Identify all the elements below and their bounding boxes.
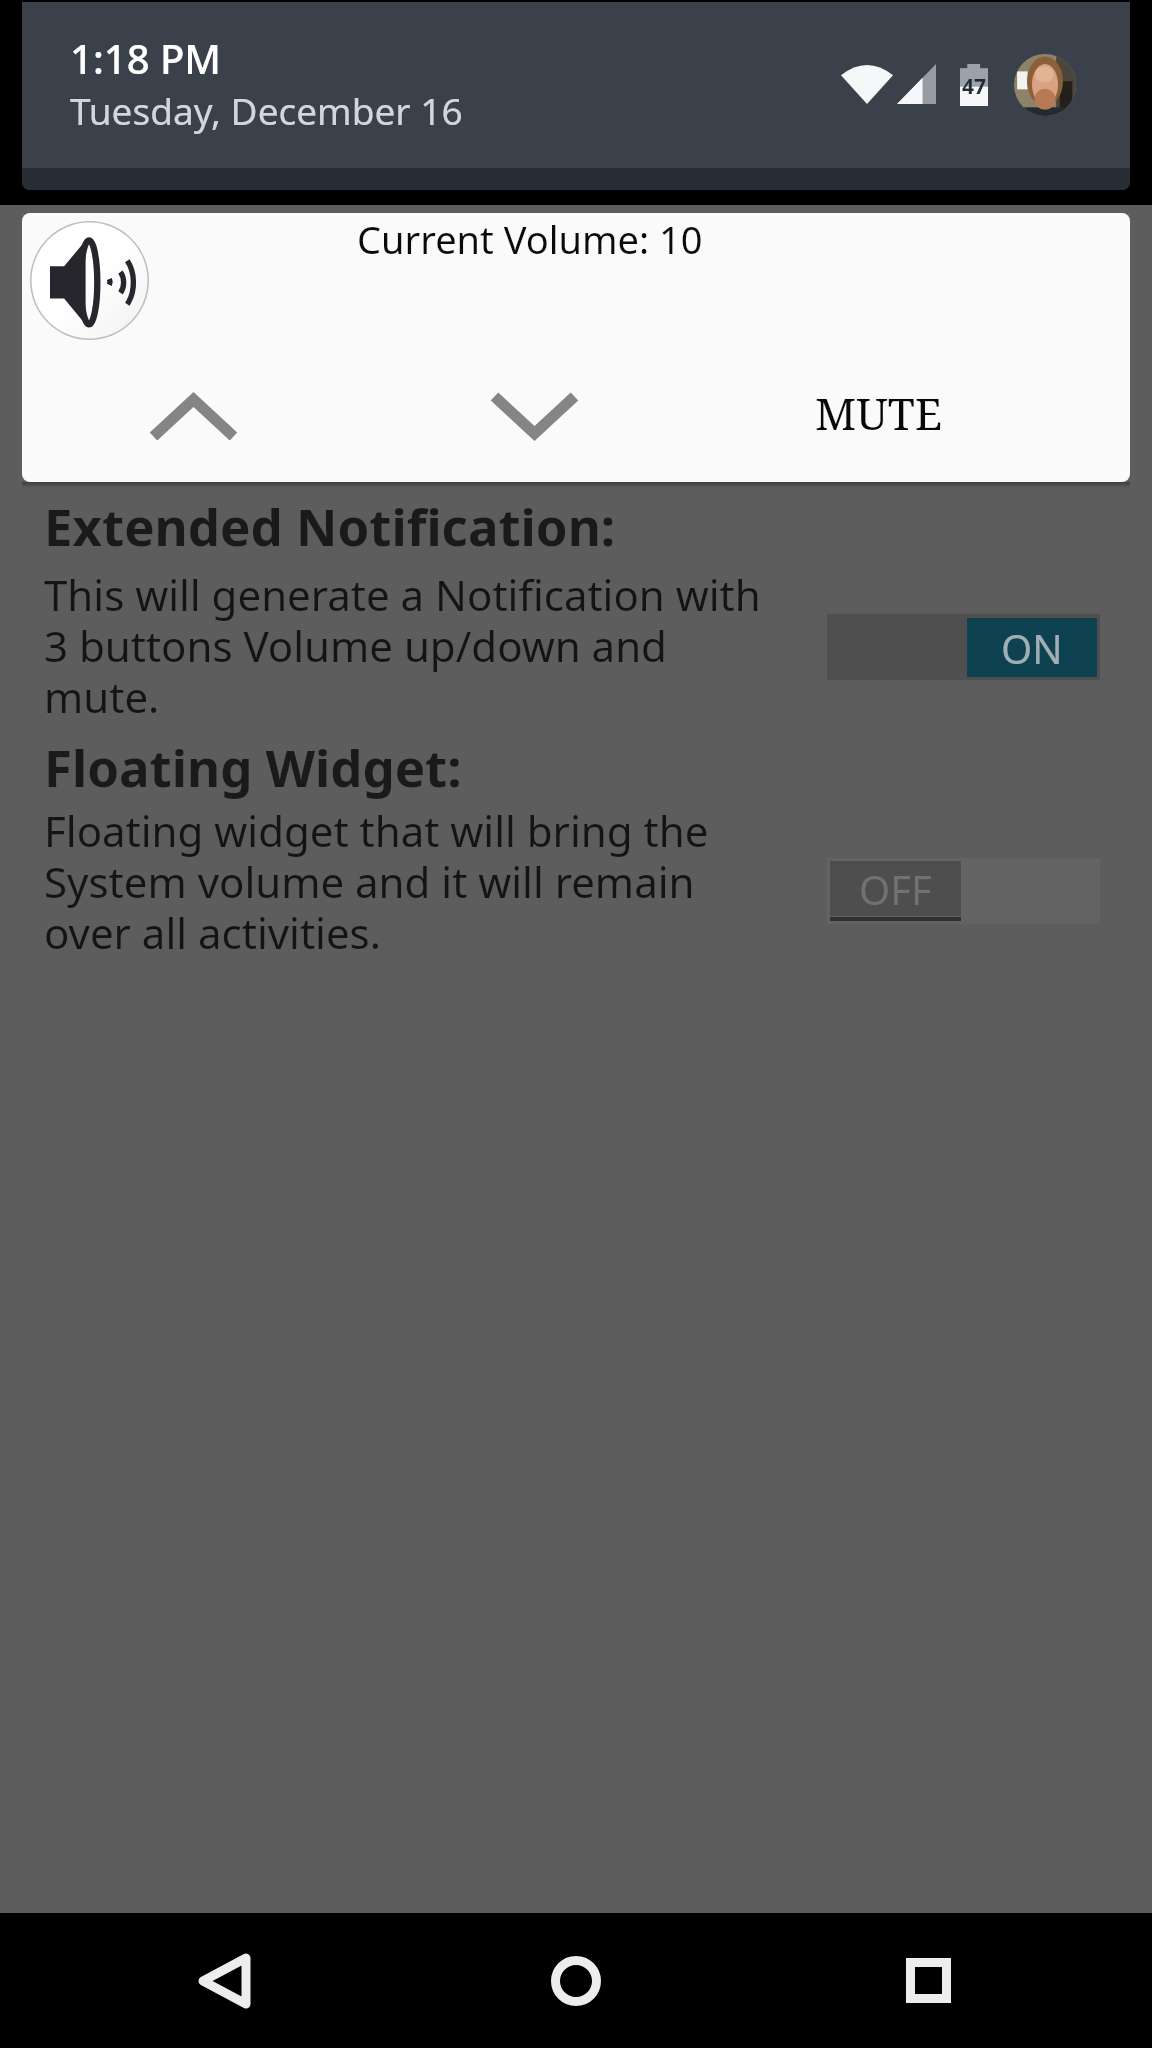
staticText: MUTE	[815, 383, 943, 443]
button[interactable]: MUTE	[756, 358, 1002, 468]
staticText: 47	[962, 72, 987, 101]
button[interactable]: Back	[132, 1913, 316, 2048]
button[interactable]: Volume up	[81, 363, 305, 473]
staticText: Tuesday, December 16	[70, 85, 463, 135]
staticText: This will generate a Notification with 3…	[44, 566, 784, 725]
button[interactable]: 1:18 PM	[22, 2, 1130, 190]
staticText: Current Volume: 10	[357, 213, 703, 265]
staticText: ON	[1001, 621, 1063, 675]
button[interactable]: Home	[484, 1913, 668, 2048]
button[interactable]: Floating widget switch, off	[827, 858, 1100, 924]
staticText: Floating widget that will bring the Syst…	[44, 802, 744, 961]
staticText: Extended Notification:	[44, 491, 616, 560]
staticText: 1:18 PM	[70, 31, 222, 85]
staticText: Floating Widget:	[44, 732, 462, 801]
button[interactable]: Recent apps	[836, 1913, 1020, 2048]
button[interactable]: Extended notification switch, on	[827, 614, 1100, 680]
button[interactable]: User profile	[1014, 54, 1076, 116]
button[interactable]: Current Volume: 10	[22, 213, 1130, 482]
button[interactable]: Volume down	[422, 360, 646, 470]
staticText: OFF	[859, 862, 932, 916]
